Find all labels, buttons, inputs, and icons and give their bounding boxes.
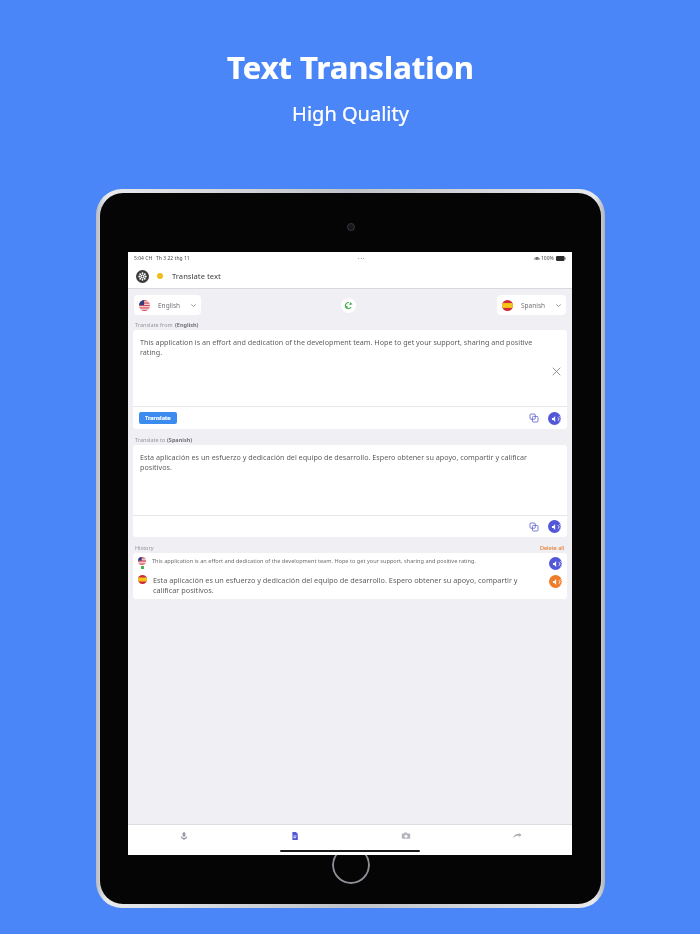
staticText: Text Translation [227,46,474,88]
staticText: High Quality [292,100,409,127]
staticText: Spanish [521,301,546,310]
staticText: History [135,544,154,551]
button[interactable]: Listen [549,575,562,588]
staticText: This application is an effort and dedica… [152,557,545,565]
button[interactable]: English [134,295,201,315]
button[interactable]: Translate [139,412,177,424]
button[interactable]: Listen [549,557,562,570]
button[interactable]: Camera [350,825,461,847]
button[interactable]: Listen [548,412,561,425]
staticText: English [158,301,181,310]
staticText: Esta aplicación es un esfuerzo y dedicac… [140,452,557,472]
staticText: 100% [541,255,554,262]
staticText: Translate text [172,271,221,281]
staticText: Esta aplicación es un esfuerzo y dedicac… [153,575,545,595]
button[interactable]: Listen [548,520,561,533]
staticText: (Spanish) [167,436,193,443]
staticText: Translate [145,414,171,422]
staticText: Translate to [135,436,167,443]
staticText: 5:04 CH Th 3 22 thg 11 [134,255,190,262]
button[interactable]: Text [239,825,350,847]
staticText: This application is an effort and dedica… [140,337,545,357]
staticText: Translate from [135,321,175,328]
button[interactable]: Copy [528,412,540,424]
staticText: • • • [358,256,365,261]
button[interactable]: Copy [528,521,540,533]
button[interactable]: Spanish [497,295,566,315]
button[interactable]: Settings [136,270,149,283]
staticText: Delete all [540,544,565,551]
button[interactable]: Delete all [540,544,565,551]
button[interactable]: Clear [551,366,561,376]
button[interactable]: This application is an effort and dedica… [133,553,567,599]
button[interactable]: Share [461,825,572,847]
button[interactable]: Voice input [128,825,239,847]
staticText: (English) [175,321,199,328]
button[interactable]: Swap languages [341,298,356,313]
